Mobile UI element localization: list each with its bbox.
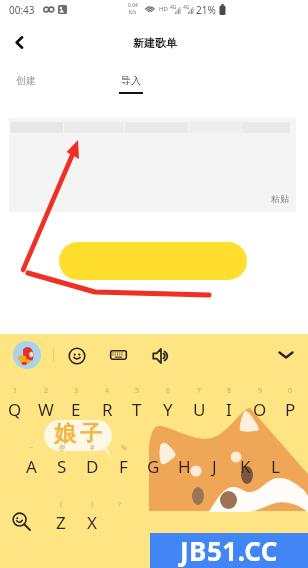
staticText: 21% xyxy=(196,3,216,17)
button[interactable]: Voice input xyxy=(152,348,170,364)
button[interactable]: ) xyxy=(77,499,107,535)
button[interactable]: / xyxy=(260,443,290,479)
button[interactable]: 0 xyxy=(275,386,305,422)
staticText: L xyxy=(271,455,280,478)
staticText: J xyxy=(212,455,217,478)
staticText: 0.04 xyxy=(128,2,138,9)
staticText: HD xyxy=(159,5,168,13)
button[interactable]: ~ xyxy=(16,443,46,479)
staticText: S xyxy=(57,455,67,478)
staticText: 0 xyxy=(288,386,293,396)
staticText: ( xyxy=(213,443,216,453)
staticText: H xyxy=(178,455,191,478)
button[interactable]: 6 xyxy=(153,386,183,422)
button[interactable]: 1 xyxy=(0,386,30,422)
staticText: W xyxy=(38,398,54,421)
staticText: R xyxy=(102,398,113,421)
staticText: O xyxy=(253,398,267,421)
staticText: D xyxy=(86,455,99,478)
button[interactable]: ( xyxy=(46,499,76,535)
button[interactable]: ? xyxy=(105,500,135,516)
button[interactable]: 8 xyxy=(214,386,244,422)
staticText: 00:43 xyxy=(9,3,35,17)
button[interactable]: 创建 xyxy=(16,74,36,87)
button[interactable]: Hide keyboard xyxy=(278,350,294,360)
button[interactable]: ( xyxy=(199,443,229,479)
staticText: Q xyxy=(8,398,22,421)
staticText: 粘贴 xyxy=(271,193,289,204)
staticText: 5 xyxy=(135,386,140,396)
button[interactable]: 5 xyxy=(122,386,152,422)
staticText: + xyxy=(182,443,187,453)
button[interactable]: 9 xyxy=(245,386,275,422)
staticText: 1 xyxy=(13,386,18,396)
staticText: 4 xyxy=(105,386,110,396)
staticText: 8 xyxy=(227,386,232,396)
staticText: ~ xyxy=(29,443,34,453)
staticText: 9 xyxy=(258,386,263,396)
staticText: 4G xyxy=(183,4,190,11)
button[interactable]: - xyxy=(138,443,168,479)
staticText: 4G xyxy=(170,4,177,11)
staticText: ? xyxy=(118,500,122,510)
button[interactable]: 导入 xyxy=(119,74,143,94)
staticText: 新建歌单 xyxy=(133,36,177,50)
button[interactable]: % xyxy=(108,443,138,479)
staticText: K xyxy=(240,455,251,478)
staticText: % xyxy=(121,443,127,453)
button[interactable]: Keyboard layout xyxy=(110,348,127,362)
staticText: I xyxy=(226,398,232,421)
button[interactable]: @ xyxy=(47,443,77,479)
button[interactable]: 3 xyxy=(61,386,91,422)
button[interactable]: 2 xyxy=(31,386,61,422)
staticText: JB51.CC xyxy=(180,533,279,568)
staticText: 6 xyxy=(166,386,171,396)
staticText: / xyxy=(274,443,277,453)
button[interactable]: Search emoji xyxy=(12,512,31,531)
staticText: # xyxy=(90,443,95,453)
staticText: 创建 xyxy=(16,74,36,87)
staticText: T xyxy=(132,398,142,421)
staticText: K/s xyxy=(129,9,137,16)
button[interactable]: ) xyxy=(230,443,260,479)
staticText: ) xyxy=(244,443,247,453)
staticText: Z xyxy=(56,511,66,534)
staticText: 3 xyxy=(74,386,79,396)
button[interactable]: Emoji xyxy=(68,347,86,365)
button[interactable]: 7 xyxy=(184,386,214,422)
staticText: 2 xyxy=(44,386,49,396)
button[interactable]: Sticker store xyxy=(13,341,41,369)
staticText: 7 xyxy=(197,386,202,396)
staticText: ( xyxy=(60,499,63,509)
staticText: ) xyxy=(91,499,94,509)
staticText: P xyxy=(285,398,296,421)
staticText: - xyxy=(152,443,155,453)
button[interactable]: + xyxy=(169,443,199,479)
button[interactable]: 4 xyxy=(92,386,122,422)
staticText: U xyxy=(193,398,206,421)
staticText: X xyxy=(87,511,97,534)
staticText: A xyxy=(26,455,37,478)
staticText: 娘子 xyxy=(52,420,104,448)
button[interactable]: # xyxy=(77,443,107,479)
staticText: F xyxy=(119,455,128,478)
staticText: E xyxy=(71,398,81,421)
button[interactable]: Back xyxy=(7,30,32,55)
staticText: @ xyxy=(59,443,66,453)
staticText: G xyxy=(147,455,160,478)
button[interactable]: 粘贴 xyxy=(271,193,289,204)
staticText: Y xyxy=(163,398,173,421)
staticText: 导入 xyxy=(121,74,141,87)
